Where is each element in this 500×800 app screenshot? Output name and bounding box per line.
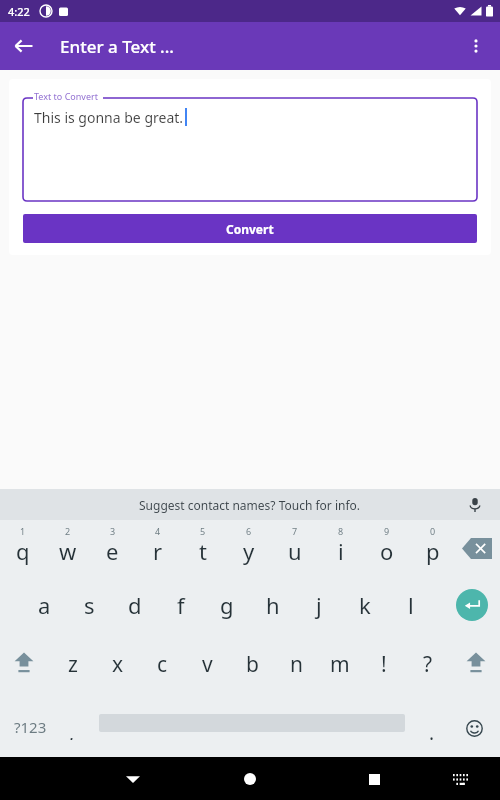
button[interactable]: 3 <box>90 520 135 580</box>
staticText: q <box>16 536 30 566</box>
button[interactable]: 7 <box>272 520 318 580</box>
staticText: h <box>266 590 280 620</box>
staticText: 4 <box>155 525 161 537</box>
button[interactable]: a <box>22 580 67 640</box>
staticText: y <box>243 536 255 566</box>
staticText: r <box>153 536 163 566</box>
staticText: 7 <box>292 525 298 537</box>
button[interactable]: s <box>67 580 112 640</box>
staticText: n <box>290 650 303 679</box>
staticText: l <box>408 590 414 620</box>
button[interactable]: b <box>230 640 274 700</box>
staticText: d <box>128 590 142 620</box>
staticText: k <box>359 590 371 620</box>
button[interactable]: f <box>158 580 204 640</box>
button[interactable]: g <box>204 580 250 640</box>
staticText: b <box>246 650 259 679</box>
staticText: e <box>106 536 119 566</box>
button[interactable]: k <box>342 580 388 640</box>
staticText: 4:22 <box>8 4 30 19</box>
button[interactable]: Text to Convert <box>23 91 477 201</box>
staticText: Text to Convert <box>34 90 98 102</box>
button[interactable]: Enter <box>456 589 488 621</box>
button[interactable]: Recents <box>356 761 392 797</box>
button[interactable]: Backspace <box>462 538 492 559</box>
staticText: , <box>69 720 75 740</box>
button[interactable]: c <box>140 640 185 700</box>
button[interactable]: d <box>112 580 158 640</box>
staticText: 1 <box>20 525 26 537</box>
button[interactable]: m <box>318 640 362 700</box>
staticText: 9 <box>384 525 390 537</box>
button[interactable]: Home <box>232 761 268 797</box>
button[interactable]: . <box>422 720 442 740</box>
button[interactable]: 4 <box>135 520 180 580</box>
staticText: t <box>199 536 207 566</box>
button[interactable]: Back <box>115 761 151 797</box>
button[interactable]: Shift <box>462 652 490 678</box>
staticText: 6 <box>246 525 252 537</box>
button[interactable]: Voice input <box>462 492 488 518</box>
staticText: ? <box>423 650 433 679</box>
button[interactable]: Suggest contact names? Touch for info. <box>0 489 500 520</box>
staticText: ?123 <box>14 717 47 737</box>
staticText: Suggest contact names? Touch for info. <box>139 497 361 513</box>
button[interactable]: 6 <box>226 520 272 580</box>
staticText: i <box>338 536 344 566</box>
staticText: u <box>288 536 302 566</box>
button[interactable]: 9 <box>364 520 410 580</box>
button[interactable]: 8 <box>318 520 364 580</box>
button[interactable]: l <box>388 580 434 640</box>
staticText: x <box>112 650 124 679</box>
button[interactable]: Shift <box>10 652 38 678</box>
staticText: 2 <box>65 525 71 537</box>
staticText: o <box>380 536 394 566</box>
button[interactable]: Emoji <box>462 716 486 740</box>
staticText: v <box>202 650 213 679</box>
button[interactable]: , <box>62 720 82 740</box>
staticText: 5 <box>200 525 206 537</box>
button[interactable]: j <box>296 580 342 640</box>
button[interactable]: 1 <box>0 520 45 580</box>
button[interactable]: ! <box>362 640 406 700</box>
staticText: z <box>68 650 78 679</box>
staticText: . <box>429 720 435 740</box>
button[interactable]: ?123 <box>4 714 56 740</box>
button[interactable]: z <box>50 640 95 700</box>
button[interactable]: 5 <box>180 520 226 580</box>
staticText: c <box>157 650 168 679</box>
staticText: m <box>330 650 350 679</box>
staticText: a <box>38 590 51 620</box>
button[interactable]: Back <box>6 28 42 64</box>
staticText: Enter a Text ... <box>60 35 174 58</box>
staticText: s <box>84 590 95 620</box>
staticText: p <box>426 536 440 566</box>
staticText: w <box>59 536 77 566</box>
button[interactable]: n <box>274 640 318 700</box>
button[interactable]: x <box>95 640 140 700</box>
button[interactable]: 0 <box>410 520 456 580</box>
button[interactable]: h <box>250 580 296 640</box>
staticText: g <box>220 590 234 620</box>
button[interactable]: Switch keyboard <box>444 763 476 795</box>
staticText: 8 <box>338 525 344 537</box>
button[interactable]: 2 <box>45 520 90 580</box>
staticText: ! <box>381 650 387 679</box>
button[interactable]: Convert <box>23 214 477 243</box>
staticText: f <box>177 590 185 620</box>
staticText: 3 <box>110 525 116 537</box>
button[interactable]: More options <box>456 26 496 66</box>
staticText: Convert <box>226 221 274 237</box>
button[interactable]: ? <box>406 640 450 700</box>
staticText: This is gonna be great. <box>34 108 184 127</box>
staticText: 0 <box>430 525 436 537</box>
staticText: j <box>316 590 322 620</box>
button[interactable]: v <box>185 640 230 700</box>
